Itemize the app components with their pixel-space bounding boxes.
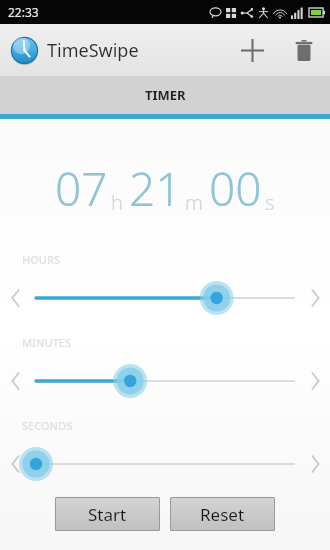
button[interactable]: Start — [55, 497, 160, 531]
staticText: h — [111, 189, 123, 216]
button[interactable]: Increase HOURS — [300, 283, 330, 313]
staticText: TimeSwipe — [47, 38, 139, 63]
button[interactable]: Decrease MINUTES — [0, 366, 30, 396]
staticText: Start — [88, 503, 127, 526]
button[interactable] — [30, 444, 300, 484]
staticText: SECONDS — [22, 418, 73, 433]
staticText: MINUTES — [22, 335, 72, 350]
staticText: s — [265, 189, 275, 216]
button[interactable]: Add — [226, 24, 278, 76]
button[interactable]: Decrease HOURS — [0, 283, 30, 313]
button[interactable]: Increase MINUTES — [300, 366, 330, 396]
staticText: Reset — [200, 503, 245, 526]
button[interactable]: Decrease SECONDS — [0, 449, 30, 479]
staticText: 00 — [209, 157, 262, 220]
button[interactable] — [30, 278, 300, 318]
staticText: 22:33 — [8, 4, 39, 20]
button[interactable]: Delete — [278, 24, 330, 76]
button[interactable]: TIMER — [0, 76, 330, 114]
staticText: HOURS — [22, 252, 60, 267]
button[interactable]: Reset — [170, 497, 275, 531]
button[interactable] — [30, 361, 300, 401]
staticText: TIMER — [145, 86, 186, 104]
staticText: 21 — [129, 157, 182, 220]
staticText: m — [185, 189, 203, 216]
button[interactable]: Increase SECONDS — [300, 449, 330, 479]
staticText: 07 — [55, 157, 108, 220]
